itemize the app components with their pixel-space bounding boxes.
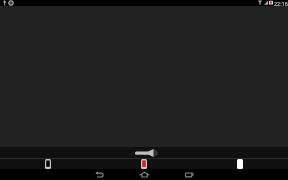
button[interactable]: Recent apps bbox=[179, 169, 199, 180]
button[interactable]: Battery bbox=[192, 158, 288, 169]
button[interactable]: Devices bbox=[0, 158, 96, 169]
button[interactable]: Back bbox=[89, 169, 109, 180]
button[interactable]: Home bbox=[134, 169, 154, 180]
button[interactable]: Flashlight bbox=[127, 147, 161, 158]
button[interactable]: This phone bbox=[96, 158, 192, 169]
staticText: 22:16 bbox=[274, 0, 288, 6]
